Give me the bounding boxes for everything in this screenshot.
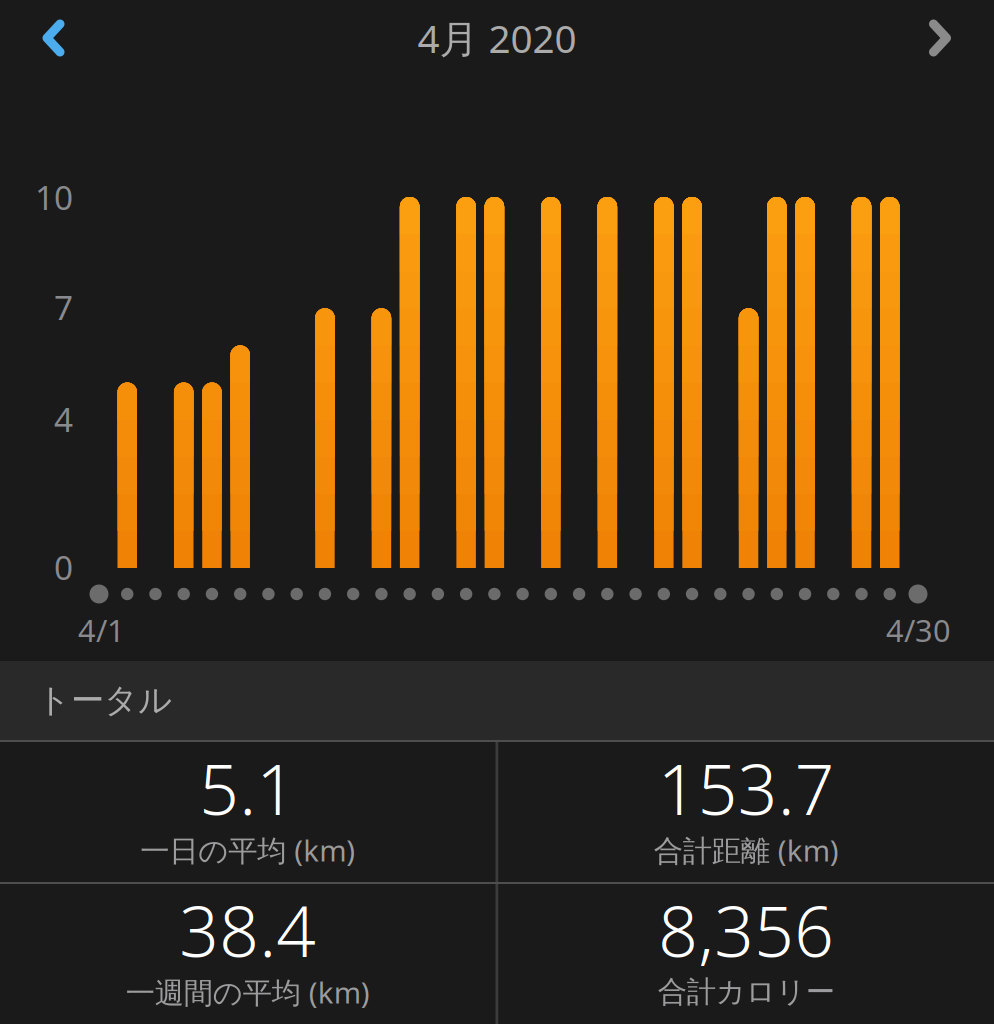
staticText: 一日の平均 (km) — [140, 830, 355, 869]
button[interactable]: Next month — [886, 0, 994, 82]
staticText: 合計距離 (km) — [654, 830, 839, 869]
staticText: 4/1 — [78, 610, 125, 650]
staticText: 0 — [54, 545, 73, 589]
button[interactable]: Previous month — [0, 0, 107, 82]
staticText: 10 — [35, 175, 73, 219]
staticText: 5.1 — [199, 742, 296, 834]
staticText: 合計カロリー — [658, 974, 835, 1010]
staticText: 一週間の平均 (km) — [126, 972, 370, 1011]
staticText: 4/30 — [886, 610, 951, 650]
staticText: 38.4 — [179, 884, 316, 976]
staticText: 153.7 — [658, 742, 835, 834]
staticText: 4月 2020 — [417, 12, 576, 64]
staticText: トータル — [37, 680, 172, 721]
staticText: 8,356 — [658, 884, 834, 976]
staticText: 4 — [54, 397, 73, 441]
staticText: 7 — [54, 285, 73, 329]
